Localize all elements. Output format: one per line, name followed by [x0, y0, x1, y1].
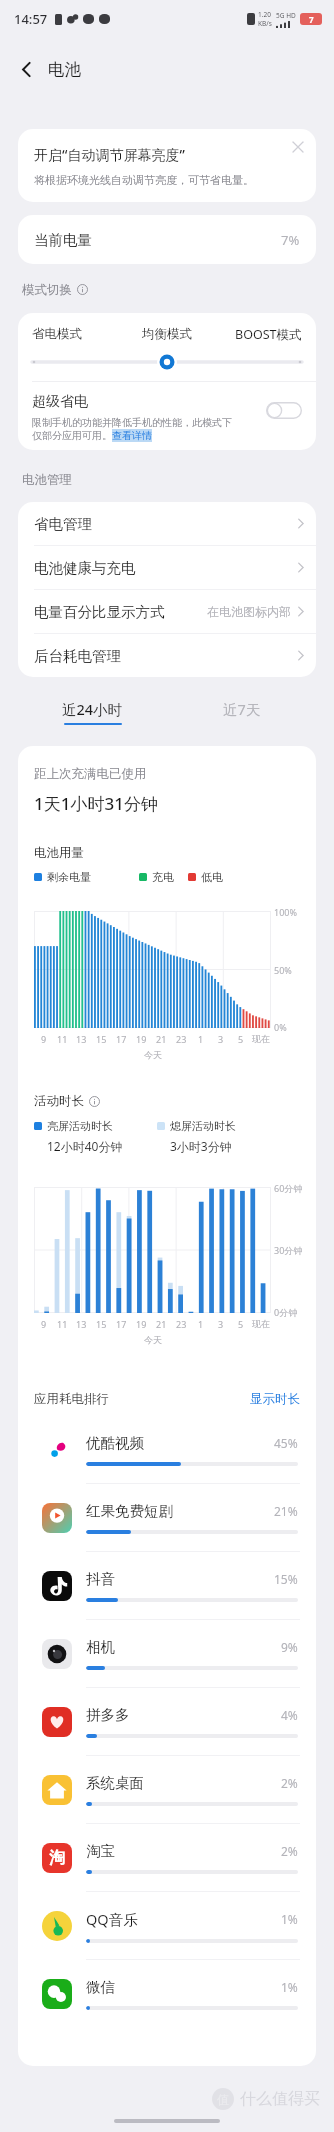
staticText: 3 — [218, 1318, 224, 1330]
staticText: 充电 — [152, 870, 174, 884]
button[interactable]: 省电模式 — [32, 325, 122, 343]
staticText: 9% — [281, 1639, 298, 1655]
button[interactable]: 显示时长 — [250, 1391, 300, 1407]
staticText: 当前电量 — [34, 231, 92, 249]
button[interactable]: 优酷视频 — [34, 1416, 300, 1483]
staticText: 电池 — [48, 59, 81, 80]
staticText: 省电管理 — [34, 515, 92, 533]
staticText: 11 — [57, 1033, 68, 1045]
staticText: 19 — [136, 1033, 147, 1045]
staticText: 电池健康与充电 — [34, 559, 136, 577]
staticText: 3 — [218, 1033, 224, 1045]
staticText: 7% — [281, 231, 300, 249]
staticText: 9 — [41, 1033, 47, 1045]
button[interactable]: 超级省电 — [18, 382, 316, 450]
staticText: 14:57 — [14, 10, 48, 28]
button[interactable]: BOOST模式 — [212, 325, 302, 343]
staticText: 值 — [217, 2092, 229, 2107]
staticText: 13 — [76, 1033, 87, 1045]
staticText: 21 — [156, 1318, 167, 1330]
button[interactable]: 微信 — [34, 1960, 300, 2028]
staticText: 21 — [156, 1033, 167, 1045]
staticText: 近7天 — [223, 699, 261, 719]
staticText: 开启“自动调节屏幕亮度” — [34, 145, 185, 164]
staticText: 30分钟 — [274, 1244, 314, 1256]
staticText: 活动时长 — [34, 1093, 84, 1109]
staticText: 1天1小时31分钟 — [34, 792, 158, 815]
staticText: 13 — [76, 1318, 87, 1330]
staticText: 45% — [274, 1435, 298, 1451]
staticText: 均衡模式 — [142, 326, 192, 342]
button[interactable]: 近7天 — [167, 699, 316, 725]
staticText: 7 — [309, 14, 314, 25]
staticText: 模式切换 — [22, 282, 72, 297]
button[interactable]: 均衡模式 — [122, 325, 212, 343]
button[interactable]: 关闭 — [284, 133, 312, 161]
button[interactable]: 近24小时 — [18, 699, 167, 725]
staticText: 0% — [274, 1021, 314, 1033]
staticText: 亮屏活动时长 — [47, 1119, 113, 1133]
staticText: 0分钟 — [274, 1306, 314, 1318]
button[interactable]: 省电管理 — [18, 502, 316, 545]
staticText: 现在 — [252, 1033, 270, 1044]
staticText: 淘 — [49, 1848, 65, 1868]
staticText: 5 — [238, 1033, 244, 1045]
button[interactable]: 抖音 — [34, 1552, 300, 1619]
staticText: 现在 — [252, 1318, 270, 1329]
staticText: 后台耗电管理 — [34, 647, 121, 665]
staticText: 11 — [57, 1318, 68, 1330]
staticText: 微信 — [86, 1978, 115, 1996]
staticText: 1.20 — [258, 10, 271, 19]
button[interactable]: 当前电量 — [18, 215, 316, 264]
staticText: 15 — [96, 1318, 107, 1330]
staticText: 17 — [116, 1033, 127, 1045]
button[interactable]: 超级省电开关 — [266, 402, 302, 419]
button[interactable]: 红果免费短剧 — [34, 1484, 300, 1551]
button[interactable]: 系统桌面 — [34, 1756, 300, 1823]
staticText: 1% — [281, 1979, 298, 1995]
staticText: 淘宝 — [86, 1842, 115, 1860]
button[interactable]: QQ音乐 — [34, 1892, 300, 1959]
staticText: 1 — [198, 1318, 204, 1330]
staticText: 显示时长 — [250, 1391, 300, 1407]
button[interactable]: 后台耗电管理 — [18, 634, 316, 677]
button[interactable]: 电池健康与充电 — [18, 546, 316, 589]
staticText: QQ音乐 — [86, 1909, 138, 1929]
staticText: 熄屏活动时长 — [170, 1119, 236, 1133]
staticText: 查看详情 — [112, 429, 152, 442]
staticText: 电池用量 — [34, 845, 84, 861]
staticText: 系统桌面 — [86, 1774, 144, 1792]
staticText: 限制手机的功能并降低手机的性能，此模式下 — [32, 416, 232, 429]
staticText: 100% — [274, 906, 314, 918]
staticText: 拼多多 — [86, 1706, 130, 1724]
staticText: 50% — [274, 964, 314, 976]
staticText: 近24小时 — [62, 699, 123, 719]
staticText: 21% — [274, 1503, 298, 1519]
staticText: 电量百分比显示方式 — [34, 603, 165, 621]
staticText: KB/s — [258, 19, 272, 28]
staticText: 应用耗电排行 — [34, 1391, 109, 1407]
staticText: 距上次充满电已使用 — [34, 766, 147, 782]
button[interactable]: 淘 — [34, 1824, 300, 1891]
button[interactable]: 查看详情 — [112, 429, 152, 442]
button[interactable]: 拼多多 — [34, 1688, 300, 1755]
staticText: 相机 — [86, 1638, 115, 1656]
staticText: 15% — [274, 1571, 298, 1587]
staticText: 仅部分应用可用。 — [32, 429, 112, 442]
staticText: 5 — [238, 1318, 244, 1330]
staticText: 23 — [176, 1033, 187, 1045]
staticText: 低电 — [201, 870, 223, 884]
staticText: 9 — [41, 1318, 47, 1330]
staticText: 今天 — [144, 1334, 162, 1345]
staticText: 超级省电 — [32, 393, 88, 411]
staticText: 抖音 — [86, 1570, 115, 1588]
button[interactable]: 返回 — [12, 55, 40, 83]
staticText: 什么值得买 — [240, 2089, 320, 2109]
staticText: 3小时3分钟 — [170, 1138, 232, 1154]
staticText: 5G HD — [276, 11, 296, 20]
staticText: 12小时40分钟 — [47, 1138, 123, 1154]
button[interactable]: 电量百分比显示方式 — [18, 590, 316, 633]
staticText: 17 — [116, 1318, 127, 1330]
staticText: 优酷视频 — [86, 1434, 144, 1452]
button[interactable]: 相机 — [34, 1620, 300, 1687]
